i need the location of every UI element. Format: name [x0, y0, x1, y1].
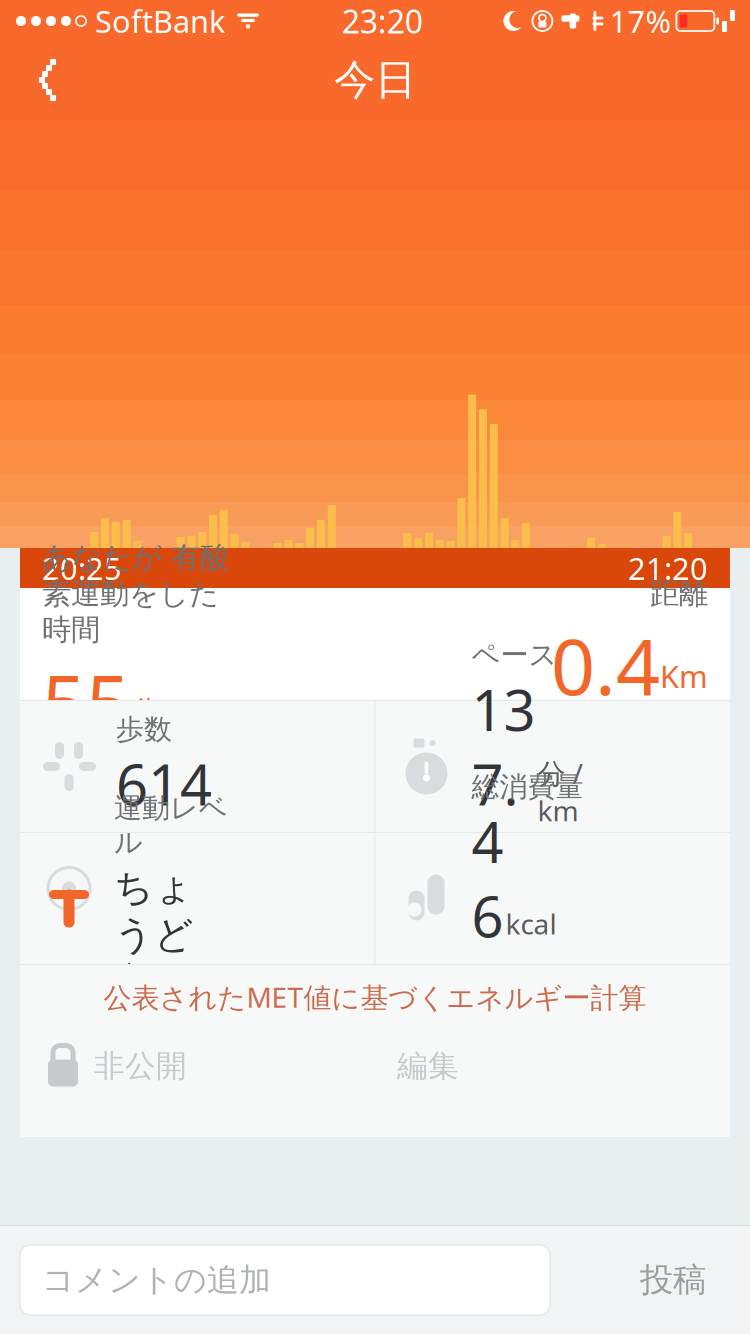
- staticText: 0.4: [551, 614, 660, 716]
- staticText: 歩数: [116, 712, 172, 746]
- button[interactable]: 非公開: [20, 1029, 207, 1103]
- staticText: 距離: [650, 576, 708, 612]
- staticText: 運動レベル: [114, 791, 228, 860]
- staticText: 614: [116, 746, 212, 821]
- staticText: 今日: [334, 55, 416, 105]
- staticText: SoftBank: [95, 1, 225, 41]
- button[interactable]: 戻る: [12, 48, 76, 112]
- staticText: 投稿: [640, 1259, 706, 1300]
- staticText: 分: [130, 693, 161, 731]
- staticText: 20:25: [42, 548, 122, 588]
- button[interactable]: ペース: [375, 701, 730, 832]
- staticText: あなたが 有酸素運動をした 時間: [42, 540, 229, 648]
- staticText: 21:20: [628, 548, 708, 588]
- button[interactable]: 投稿: [614, 1245, 732, 1315]
- button[interactable]: 運動レベル: [20, 833, 374, 964]
- staticText: ペース: [471, 638, 557, 672]
- staticText: 分 / km: [537, 754, 582, 829]
- staticText: kcal: [505, 905, 556, 942]
- staticText: 編集: [397, 1047, 459, 1085]
- staticText: 17%: [609, 1, 670, 41]
- staticText: 55: [42, 650, 130, 752]
- staticText: 総消費量: [471, 770, 583, 804]
- staticText: ちょうど良い: [114, 864, 194, 1006]
- button[interactable]: 公表されたMET値に基づくエネルギー計算: [20, 965, 730, 1029]
- staticText: 467: [471, 804, 503, 1027]
- button[interactable]: 総消費量: [375, 833, 730, 964]
- staticText: 公表されたMET値に基づくエネルギー計算: [103, 978, 646, 1016]
- staticText: 137.2: [471, 672, 535, 895]
- button[interactable]: 編集: [375, 1029, 481, 1103]
- staticText: コメントの追加: [42, 1260, 271, 1300]
- button[interactable]: 歩数: [20, 701, 374, 832]
- staticText: 非公開: [94, 1047, 187, 1085]
- button[interactable]: コメントの追加: [20, 1245, 550, 1315]
- staticText: 23:20: [342, 0, 423, 42]
- staticText: Km: [660, 656, 708, 696]
